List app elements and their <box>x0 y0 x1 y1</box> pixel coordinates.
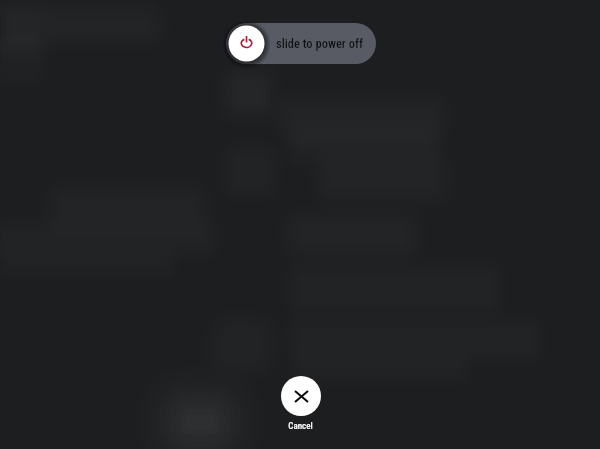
button[interactable]: slide to power off <box>226 23 376 64</box>
staticText: slide to power off <box>276 36 363 51</box>
button[interactable]: Cancel <box>281 376 321 416</box>
staticText: Cancel <box>288 421 313 432</box>
button[interactable]: Power off <box>225 22 268 65</box>
